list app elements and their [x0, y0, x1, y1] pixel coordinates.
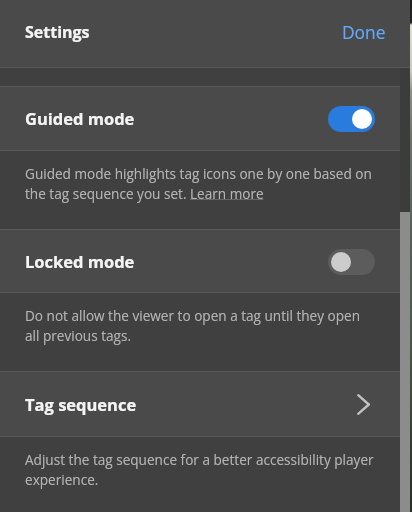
staticText: Tag sequence: [25, 393, 137, 415]
staticText: Locked mode: [25, 250, 135, 272]
staticText: Done: [342, 20, 386, 44]
button[interactable]: Locked mode: [0, 230, 410, 293]
staticText: Guided mode: [25, 107, 135, 129]
button[interactable]: Tag sequence: [0, 372, 410, 437]
staticText: Settings: [25, 21, 90, 43]
button[interactable]: Toggle off: [328, 249, 375, 275]
staticText: Guided mode highlights tag icons one by …: [25, 164, 376, 203]
button[interactable]: Done: [318, 8, 410, 56]
other: Open tag sequence: [357, 394, 370, 415]
staticText: Adjust the tag sequence for a better acc…: [25, 450, 376, 489]
staticText: Do not allow the viewer to open a tag un…: [25, 306, 376, 345]
button[interactable]: Toggle on: [328, 106, 375, 132]
button[interactable]: Guided mode: [0, 87, 410, 151]
